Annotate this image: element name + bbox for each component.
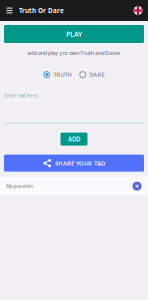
staticText: add and play yor own Truth and Dares	[27, 49, 121, 57]
button[interactable]: PLAY	[4, 25, 144, 43]
button[interactable]: DARE	[79, 70, 104, 80]
button[interactable]: Menu	[0, 0, 19, 21]
staticText: SHARE YOUR T&D	[55, 159, 105, 167]
staticText: Enter text here	[4, 93, 38, 99]
staticText: DARE	[89, 71, 104, 78]
staticText: TRUTH	[53, 71, 71, 78]
staticText: Truth Or Dare	[19, 6, 64, 15]
button[interactable]: Change language	[128, 0, 148, 21]
staticText: PLAY	[66, 29, 82, 39]
staticText: ADD	[68, 135, 80, 143]
button[interactable]: ADD	[60, 133, 87, 146]
button[interactable]: SHARE YOUR T&D	[4, 155, 144, 172]
button[interactable]: My question	[0, 177, 148, 196]
button[interactable]: TRUTH	[43, 70, 71, 80]
staticText: My question	[6, 183, 33, 189]
